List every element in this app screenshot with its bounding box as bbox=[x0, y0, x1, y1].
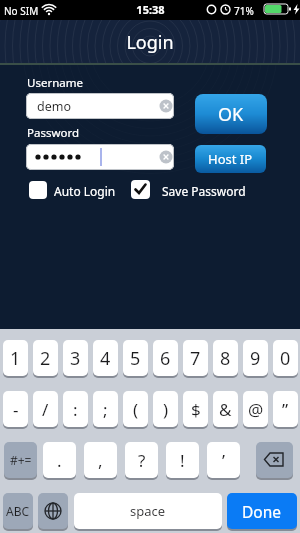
staticText: 0 bbox=[280, 346, 291, 371]
button[interactable]: 4 bbox=[93, 340, 118, 376]
staticText: ( bbox=[133, 398, 139, 421]
button[interactable]: 7 bbox=[183, 340, 208, 376]
button[interactable]: OK bbox=[195, 94, 267, 134]
staticText: ? bbox=[138, 449, 146, 472]
staticText: OK bbox=[218, 102, 244, 127]
staticText: Auto Login bbox=[54, 183, 116, 199]
staticText: $ bbox=[191, 398, 201, 421]
staticText: ABC bbox=[6, 503, 30, 519]
staticText: 71% bbox=[234, 4, 254, 18]
button[interactable]: 0 bbox=[273, 340, 298, 376]
button[interactable] bbox=[256, 442, 293, 478]
button[interactable]: ’ bbox=[207, 442, 240, 478]
button[interactable]: space bbox=[74, 493, 222, 529]
button[interactable]: , bbox=[84, 442, 117, 478]
staticText: 8 bbox=[220, 346, 231, 371]
button[interactable] bbox=[38, 493, 68, 529]
button[interactable]: 6 bbox=[153, 340, 178, 376]
staticText: 7 bbox=[190, 346, 201, 371]
button[interactable]: 8 bbox=[213, 340, 238, 376]
staticText: . bbox=[57, 449, 62, 472]
button[interactable]: 3 bbox=[63, 340, 88, 376]
staticText: ” bbox=[282, 398, 289, 421]
staticText: Password bbox=[27, 125, 80, 141]
button[interactable]: ? bbox=[125, 442, 158, 478]
staticText: - bbox=[13, 398, 19, 421]
button[interactable]: 1 bbox=[3, 340, 28, 376]
staticText: Save Password bbox=[162, 183, 246, 199]
staticText: 2 bbox=[40, 346, 51, 371]
button[interactable]: . bbox=[43, 442, 76, 478]
staticText: 9 bbox=[250, 346, 261, 371]
staticText: 1 bbox=[10, 346, 21, 371]
button[interactable]: @ bbox=[243, 391, 268, 427]
staticText: / bbox=[42, 398, 49, 421]
button[interactable]: 2 bbox=[33, 340, 58, 376]
button[interactable]: ABC bbox=[3, 493, 33, 529]
staticText: 5 bbox=[130, 346, 141, 371]
staticText: 3 bbox=[70, 346, 81, 371]
staticText: , bbox=[98, 449, 103, 472]
staticText: & bbox=[219, 398, 232, 421]
button[interactable]: ) bbox=[153, 391, 178, 427]
button[interactable]: - bbox=[3, 391, 28, 427]
staticText: 15:38 bbox=[136, 2, 165, 16]
button[interactable]: / bbox=[33, 391, 58, 427]
staticText: ; bbox=[103, 398, 108, 421]
staticText: ! bbox=[180, 449, 185, 472]
staticText: No SIM bbox=[4, 4, 39, 18]
button[interactable]: & bbox=[213, 391, 238, 427]
button[interactable]: Host IP bbox=[195, 145, 266, 173]
button[interactable]: 9 bbox=[243, 340, 268, 376]
button[interactable] bbox=[131, 180, 150, 199]
button[interactable] bbox=[29, 181, 47, 199]
button[interactable]: 5 bbox=[123, 340, 148, 376]
button[interactable]: ! bbox=[166, 442, 199, 478]
button[interactable] bbox=[26, 93, 174, 119]
staticText: Done bbox=[242, 501, 282, 522]
staticText: 6 bbox=[160, 346, 171, 371]
staticText: : bbox=[73, 398, 78, 421]
button[interactable]: $ bbox=[183, 391, 208, 427]
staticText: @ bbox=[248, 398, 264, 421]
staticText: space bbox=[130, 502, 166, 520]
staticText: #+= bbox=[10, 452, 32, 468]
staticText: ) bbox=[163, 398, 169, 421]
button[interactable]: Done bbox=[227, 493, 297, 529]
button[interactable] bbox=[26, 144, 174, 170]
staticText: ’ bbox=[222, 449, 225, 472]
button[interactable]: ( bbox=[123, 391, 148, 427]
button[interactable]: ; bbox=[93, 391, 118, 427]
button[interactable]: : bbox=[63, 391, 88, 427]
staticText: Host IP bbox=[208, 150, 253, 168]
staticText: Username bbox=[27, 75, 83, 91]
button[interactable]: #+= bbox=[4, 442, 37, 478]
button[interactable]: ” bbox=[273, 391, 298, 427]
staticText: Login bbox=[126, 30, 174, 55]
staticText: 4 bbox=[100, 346, 111, 371]
staticText: demo bbox=[37, 98, 71, 115]
